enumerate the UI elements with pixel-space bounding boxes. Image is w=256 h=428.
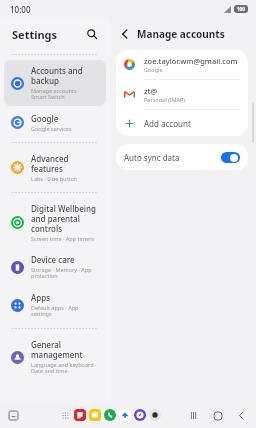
staticText: General management [31, 339, 83, 360]
button[interactable]: All apps [59, 409, 71, 421]
staticText: Labs · Side button [31, 175, 78, 182]
button[interactable]: zt@ [116, 80, 248, 109]
button[interactable]: Back [116, 25, 134, 43]
button[interactable]: Device care [4, 249, 106, 285]
button[interactable]: Google [4, 108, 106, 137]
button[interactable]: Recents panel [6, 408, 20, 422]
button[interactable]: Advanced features [4, 148, 106, 187]
button[interactable]: zoe.taylor.wm@gmail.com [116, 50, 248, 79]
button[interactable]: App 4 [134, 409, 146, 421]
staticText: Google [31, 113, 59, 124]
button[interactable]: App 3 [119, 409, 131, 421]
staticText: Add account [144, 118, 191, 129]
button[interactable]: Recent apps [187, 409, 200, 422]
button[interactable]: Apps [4, 287, 106, 323]
button[interactable]: Home [211, 409, 224, 422]
button[interactable]: Search [82, 24, 102, 44]
staticText: Storage · Memory · App protection [31, 266, 92, 280]
button[interactable]: App 5 [149, 409, 161, 421]
staticText: Settings [12, 27, 82, 42]
staticText: Accounts and backup [31, 65, 83, 86]
staticText: Google [144, 66, 163, 73]
staticText: zt@ [144, 86, 158, 96]
staticText: 100 [237, 6, 245, 12]
staticText: Auto sync data [124, 152, 221, 163]
staticText: Default apps · App settings [31, 304, 79, 318]
staticText: Apps [31, 292, 51, 303]
button[interactable]: App 0 [74, 409, 86, 421]
staticText: Screen time · App timers [31, 235, 95, 242]
staticText: zoe.taylor.wm@gmail.com [144, 56, 238, 66]
button[interactable]: App 2 [104, 409, 116, 421]
staticText: Manage accounts · Smart Switch [31, 87, 80, 101]
button[interactable]: Digital Wellbeing and parental controls [4, 198, 106, 247]
staticText: Manage accounts [137, 27, 225, 41]
button[interactable]: App 1 [89, 409, 101, 421]
staticText: Personal (IMAP) [144, 96, 185, 103]
button[interactable]: Accounts and backup [4, 60, 106, 106]
button[interactable]: General management [4, 334, 106, 380]
button[interactable]: Back [235, 409, 248, 422]
staticText: Google services [31, 125, 72, 132]
staticText: Digital Wellbeing and parental controls [31, 203, 96, 234]
staticText: Language and keyboard · Date and time [31, 361, 97, 375]
button[interactable]: Add account [116, 110, 248, 136]
staticText: 10:00 [10, 4, 31, 15]
staticText: Device care [31, 254, 75, 265]
button[interactable]: Auto sync data [116, 144, 248, 170]
staticText: Advanced features [31, 153, 69, 174]
